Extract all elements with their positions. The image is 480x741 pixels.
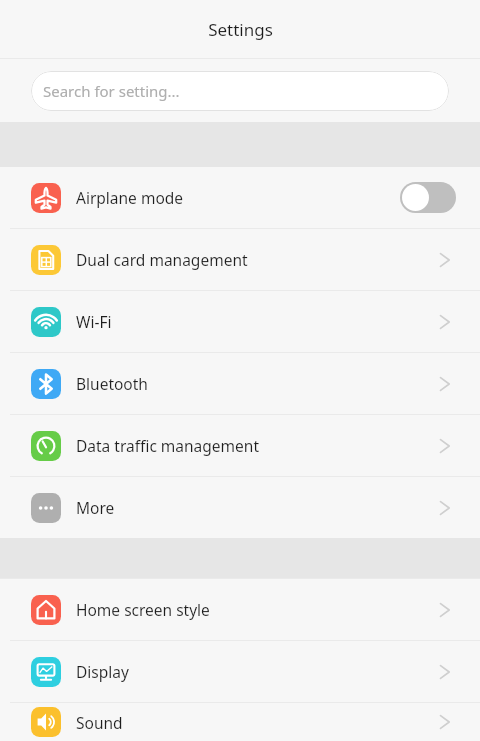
button[interactable]: Airplane mode <box>0 167 480 228</box>
button[interactable]: Bluetooth <box>0 353 480 414</box>
staticText: Search for setting... <box>43 81 180 101</box>
staticText: Settings <box>208 18 273 41</box>
staticText: Dual card management <box>76 249 438 270</box>
button[interactable]: Sound <box>0 703 480 741</box>
staticText: Wi-Fi <box>76 311 438 332</box>
button[interactable]: More <box>0 477 480 538</box>
staticText: Bluetooth <box>76 373 438 394</box>
button[interactable]: Search for setting... <box>31 71 449 111</box>
staticText: Airplane mode <box>76 187 400 208</box>
button[interactable]: Wi-Fi <box>0 291 480 352</box>
button[interactable]: Display <box>0 641 480 702</box>
staticText: Display <box>76 661 438 682</box>
staticText: Data traffic management <box>76 435 438 456</box>
staticText: Sound <box>76 712 438 733</box>
button[interactable]: Home screen style <box>0 579 480 640</box>
staticText: Home screen style <box>76 599 438 620</box>
button[interactable]: Dual card management <box>0 229 480 290</box>
staticText: More <box>76 497 438 518</box>
button[interactable]: Airplane mode toggle <box>400 182 456 213</box>
button[interactable]: Data traffic management <box>0 415 480 476</box>
